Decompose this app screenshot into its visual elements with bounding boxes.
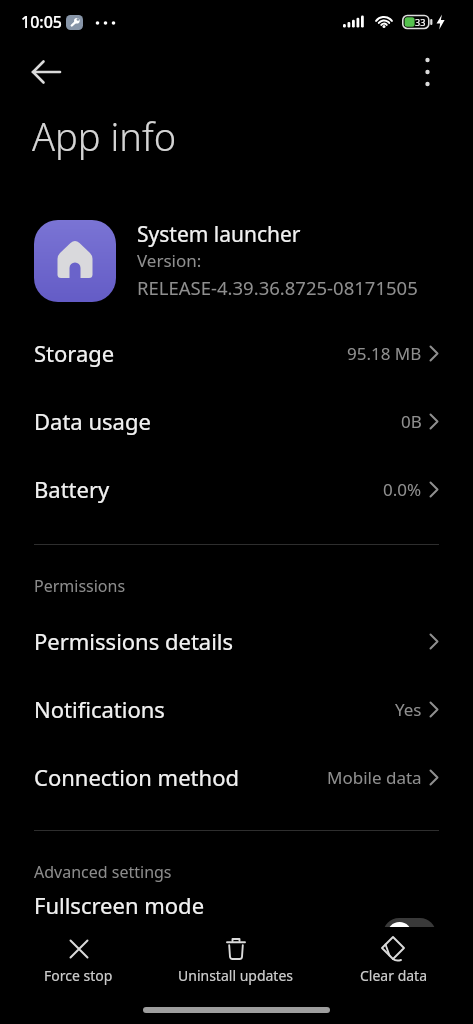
staticText: App info	[32, 110, 177, 162]
staticText: Data usage	[34, 406, 151, 436]
staticText: Force stop	[44, 966, 113, 985]
button[interactable]: Storage	[0, 319, 473, 387]
button[interactable]: Notifications	[0, 675, 473, 743]
staticText: Notifications	[34, 694, 165, 724]
staticText: Storage	[34, 338, 115, 368]
staticText: Uninstall updates	[178, 966, 294, 985]
button[interactable]: Force stop	[0, 936, 157, 985]
staticText: Yes	[395, 698, 422, 721]
staticText: Permissions	[34, 575, 126, 597]
staticText: 0B	[401, 410, 422, 433]
button[interactable]: Clear data	[315, 936, 473, 985]
staticText: RELEASE-4.39.36.8725-08171505	[137, 275, 418, 300]
staticText: System launcher	[137, 220, 301, 249]
button[interactable]	[407, 52, 447, 92]
button[interactable]: Uninstall updates	[157, 936, 315, 985]
button[interactable]: Fullscreen mode	[0, 890, 473, 950]
staticText: Mobile data	[327, 766, 422, 789]
button[interactable]: Battery	[0, 455, 473, 523]
button[interactable]	[31, 52, 71, 92]
staticText: Permissions details	[34, 626, 234, 656]
staticText: 95.18 MB	[347, 342, 422, 365]
button[interactable]: Permissions details	[0, 607, 473, 675]
staticText: Clear data	[360, 966, 428, 985]
staticText: Battery	[34, 474, 110, 504]
staticText: 33	[415, 16, 426, 28]
staticText: Version:	[137, 249, 202, 272]
staticText: 0.0%	[383, 478, 422, 501]
staticText: Fullscreen mode	[34, 890, 205, 920]
staticText: 10:05	[21, 11, 62, 33]
staticText: Advanced settings	[34, 861, 172, 883]
button[interactable]: Connection method	[0, 743, 473, 811]
staticText: Connection method	[34, 762, 239, 792]
button[interactable]: Data usage	[0, 387, 473, 455]
